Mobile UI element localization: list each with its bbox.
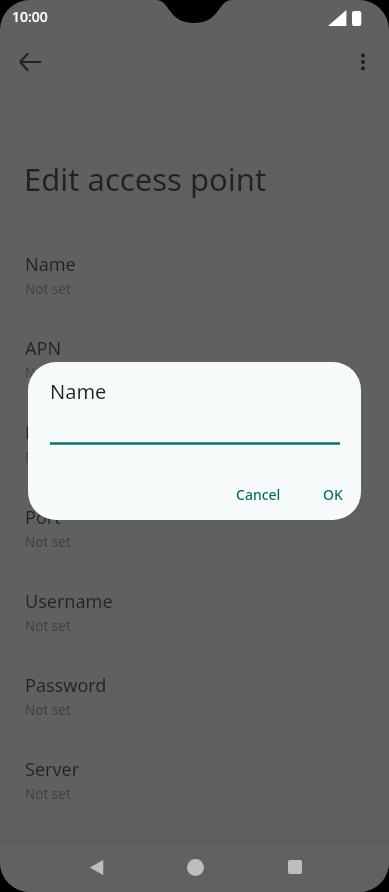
button[interactable]: Recent apps xyxy=(279,851,311,883)
button[interactable]: Port xyxy=(0,505,389,551)
button[interactable]: APN xyxy=(0,336,389,382)
staticText: Proxy xyxy=(25,420,73,445)
staticText: Username xyxy=(25,589,113,614)
staticText: Name xyxy=(50,378,107,405)
button[interactable]: More options xyxy=(341,40,385,84)
staticText: Password xyxy=(25,673,107,698)
staticText: Not set xyxy=(25,533,71,551)
staticText: OK xyxy=(323,485,343,504)
staticText: Port xyxy=(25,505,61,530)
staticText: Not set xyxy=(25,701,71,719)
button[interactable]: Back xyxy=(8,40,52,84)
staticText: 10:00 xyxy=(12,7,48,26)
button[interactable]: Name xyxy=(0,252,389,298)
button[interactable]: Back xyxy=(80,851,112,883)
staticText: APN xyxy=(25,336,62,361)
button[interactable]: Password xyxy=(0,673,389,719)
button[interactable]: Proxy xyxy=(0,420,389,466)
button[interactable]: Username xyxy=(0,589,389,635)
button[interactable]: Cancel xyxy=(224,477,293,512)
staticText: Not set xyxy=(25,448,71,466)
button[interactable]: OK xyxy=(311,477,355,512)
button[interactable]: MMSC xyxy=(0,841,389,887)
staticText: Cancel xyxy=(236,485,281,504)
staticText: Server xyxy=(25,757,80,782)
button[interactable]: Home xyxy=(179,851,211,883)
staticText: Not set xyxy=(25,364,71,382)
staticText: Not set xyxy=(25,280,71,298)
staticText: Name xyxy=(25,252,76,277)
button[interactable]: Server xyxy=(0,757,389,803)
staticText: Not set xyxy=(25,785,71,803)
staticText: Not set xyxy=(25,617,71,635)
staticText: Edit access point xyxy=(24,158,267,200)
